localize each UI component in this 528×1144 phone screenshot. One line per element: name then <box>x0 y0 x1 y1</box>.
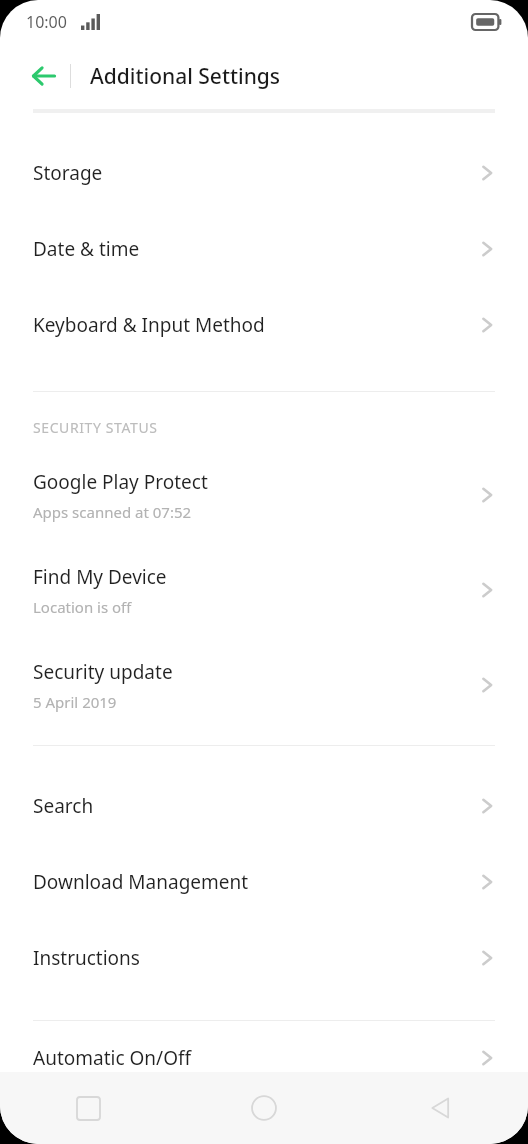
button[interactable]: Back <box>22 54 66 98</box>
staticText: Date & time <box>33 236 140 262</box>
staticText: Apps scanned at 07:52 <box>33 502 192 522</box>
staticText: Google Play Protect <box>33 469 208 495</box>
staticText: Download Management <box>33 869 249 895</box>
button[interactable]: Security update <box>0 645 528 725</box>
staticText: Location is off <box>33 597 132 617</box>
staticText: Keyboard & Input Method <box>33 312 265 338</box>
staticText: Find My Device <box>33 564 167 590</box>
button[interactable]: Google Play Protect <box>0 455 528 535</box>
staticText: 10:00 <box>26 11 67 33</box>
button[interactable]: Download Management <box>0 844 528 920</box>
staticText: Search <box>33 793 94 819</box>
staticText: SECURITY STATUS <box>33 418 158 437</box>
button[interactable]: Date & time <box>0 211 528 287</box>
button[interactable]: Recent apps <box>0 1072 176 1144</box>
button[interactable]: Search <box>0 768 528 844</box>
staticText: 5 April 2019 <box>33 692 117 712</box>
button[interactable]: Back <box>352 1072 528 1144</box>
staticText: Security update <box>33 659 173 685</box>
button[interactable]: Keyboard & Input Method <box>0 287 528 363</box>
staticText: Instructions <box>33 945 140 971</box>
button[interactable]: Automatic On/Off <box>0 1043 528 1072</box>
staticText: Automatic On/Off <box>33 1045 192 1071</box>
button[interactable]: Storage <box>0 135 528 211</box>
button[interactable]: Instructions <box>0 920 528 996</box>
staticText: Storage <box>33 160 103 186</box>
staticText: Additional Settings <box>90 62 281 91</box>
button[interactable]: Find My Device <box>0 550 528 630</box>
